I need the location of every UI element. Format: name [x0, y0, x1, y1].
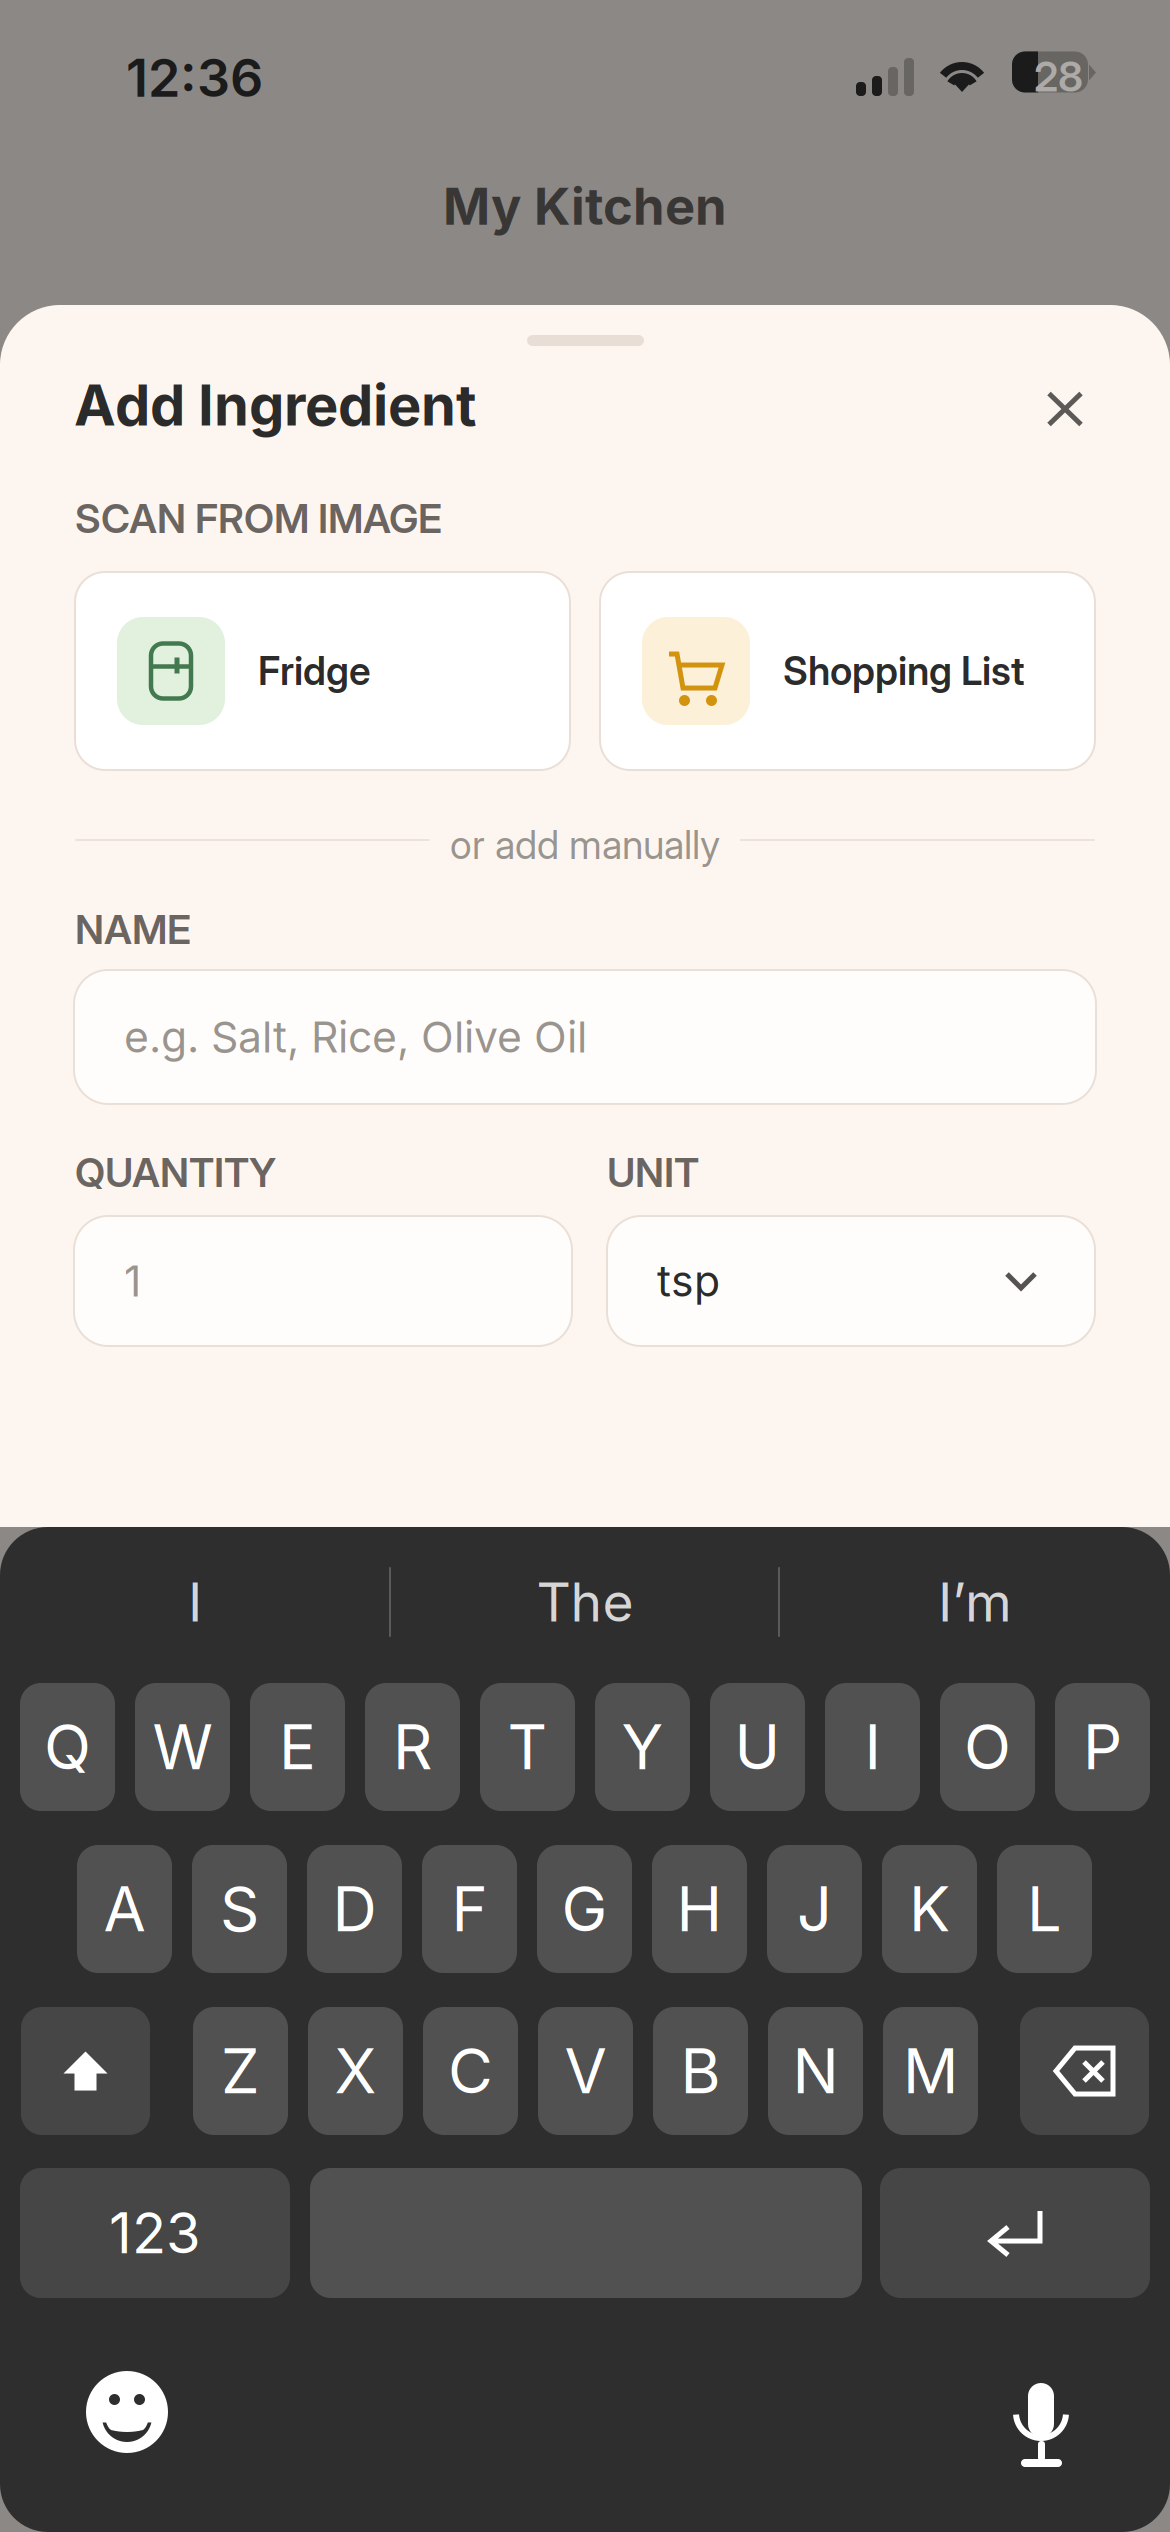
button[interactable]: T [480, 1683, 575, 1811]
staticText: NAME [75, 905, 191, 954]
button[interactable]: W [135, 1683, 230, 1811]
button[interactable]: D [307, 1845, 402, 1973]
staticText: QUANTITY [75, 1148, 276, 1197]
staticText: S [220, 1872, 259, 1946]
button[interactable]: S [192, 1845, 287, 1973]
button[interactable]: Shift [21, 2007, 150, 2135]
button[interactable]: J [767, 1845, 862, 1973]
staticText: K [909, 1872, 950, 1946]
staticText: I [864, 1710, 880, 1784]
button[interactable]: Backspace [1020, 2007, 1149, 2135]
staticText: B [680, 2034, 720, 2108]
staticText: Add Ingredient [74, 371, 477, 439]
staticText: O [964, 1710, 1011, 1784]
staticText: UNIT [607, 1148, 699, 1197]
staticText: I’m [938, 1570, 1012, 1634]
staticText: R [393, 1710, 432, 1784]
staticText: Fridge [258, 648, 371, 694]
button[interactable]: Close [1022, 366, 1108, 452]
staticText: Q [44, 1710, 91, 1784]
button[interactable]: V [538, 2007, 633, 2135]
staticText: W [152, 1710, 212, 1784]
button[interactable]: E [250, 1683, 345, 1811]
staticText: Y [621, 1710, 663, 1784]
staticText: T [507, 1710, 547, 1784]
button[interactable]: I’m [780, 1547, 1170, 1657]
button[interactable]: Fridge [75, 572, 570, 770]
button[interactable]: Emoji keyboard [86, 2371, 168, 2453]
staticText: Shopping List [783, 648, 1025, 694]
staticText: U [734, 1710, 780, 1784]
button[interactable]: Shopping List [600, 572, 1095, 770]
button[interactable]: Dictate [1013, 2367, 1069, 2453]
staticText: 1 [124, 1255, 141, 1307]
staticText: SCAN FROM IMAGE [75, 494, 442, 543]
staticText: P [1083, 1710, 1122, 1784]
button[interactable]: P [1055, 1683, 1150, 1811]
staticText: tsp [657, 1255, 720, 1307]
staticText: My Kitchen [443, 176, 727, 237]
staticText: The [536, 1570, 633, 1634]
staticText: V [564, 2034, 606, 2108]
button[interactable]: X [308, 2007, 403, 2135]
staticText: G [561, 1872, 607, 1946]
button[interactable]: Y [595, 1683, 690, 1811]
staticText: I [188, 1570, 202, 1634]
button[interactable]: The [390, 1547, 780, 1657]
button[interactable]: L [997, 1845, 1092, 1973]
button[interactable]: C [423, 2007, 518, 2135]
staticText: N [792, 2034, 838, 2108]
button[interactable]: F [422, 1845, 517, 1973]
button[interactable]: O [940, 1683, 1035, 1811]
staticText: D [332, 1872, 376, 1946]
staticText: J [797, 1872, 832, 1946]
staticText: L [1027, 1872, 1062, 1946]
staticText: e.g. Salt, Rice, Olive Oil [124, 1011, 587, 1063]
staticText: M [903, 2034, 958, 2108]
button[interactable]: H [652, 1845, 747, 1973]
button[interactable]: I [0, 1547, 390, 1657]
button[interactable]: U [710, 1683, 805, 1811]
button[interactable]: R [365, 1683, 460, 1811]
button[interactable]: G [537, 1845, 632, 1973]
button[interactable]: B [653, 2007, 748, 2135]
button[interactable]: Return [880, 2168, 1150, 2298]
staticText: C [448, 2034, 493, 2108]
button[interactable]: 123 [20, 2168, 290, 2298]
staticText: E [279, 1710, 316, 1784]
staticText: A [103, 1872, 145, 1946]
staticText: 123 [109, 2199, 201, 2267]
button[interactable]: I [825, 1683, 920, 1811]
button[interactable]: K [882, 1845, 977, 1973]
button[interactable]: Z [193, 2007, 288, 2135]
button[interactable]: M [883, 2007, 978, 2135]
button[interactable]: A [77, 1845, 172, 1973]
staticText: X [334, 2034, 376, 2108]
staticText: H [676, 1872, 722, 1946]
button[interactable]: Q [20, 1683, 115, 1811]
button[interactable]: N [768, 2007, 863, 2135]
staticText: F [451, 1872, 487, 1946]
staticText: 12:36 [126, 46, 263, 109]
staticText: or add manually [450, 822, 720, 868]
staticText: Z [221, 2034, 260, 2108]
staticText: 28 [1034, 51, 1083, 101]
